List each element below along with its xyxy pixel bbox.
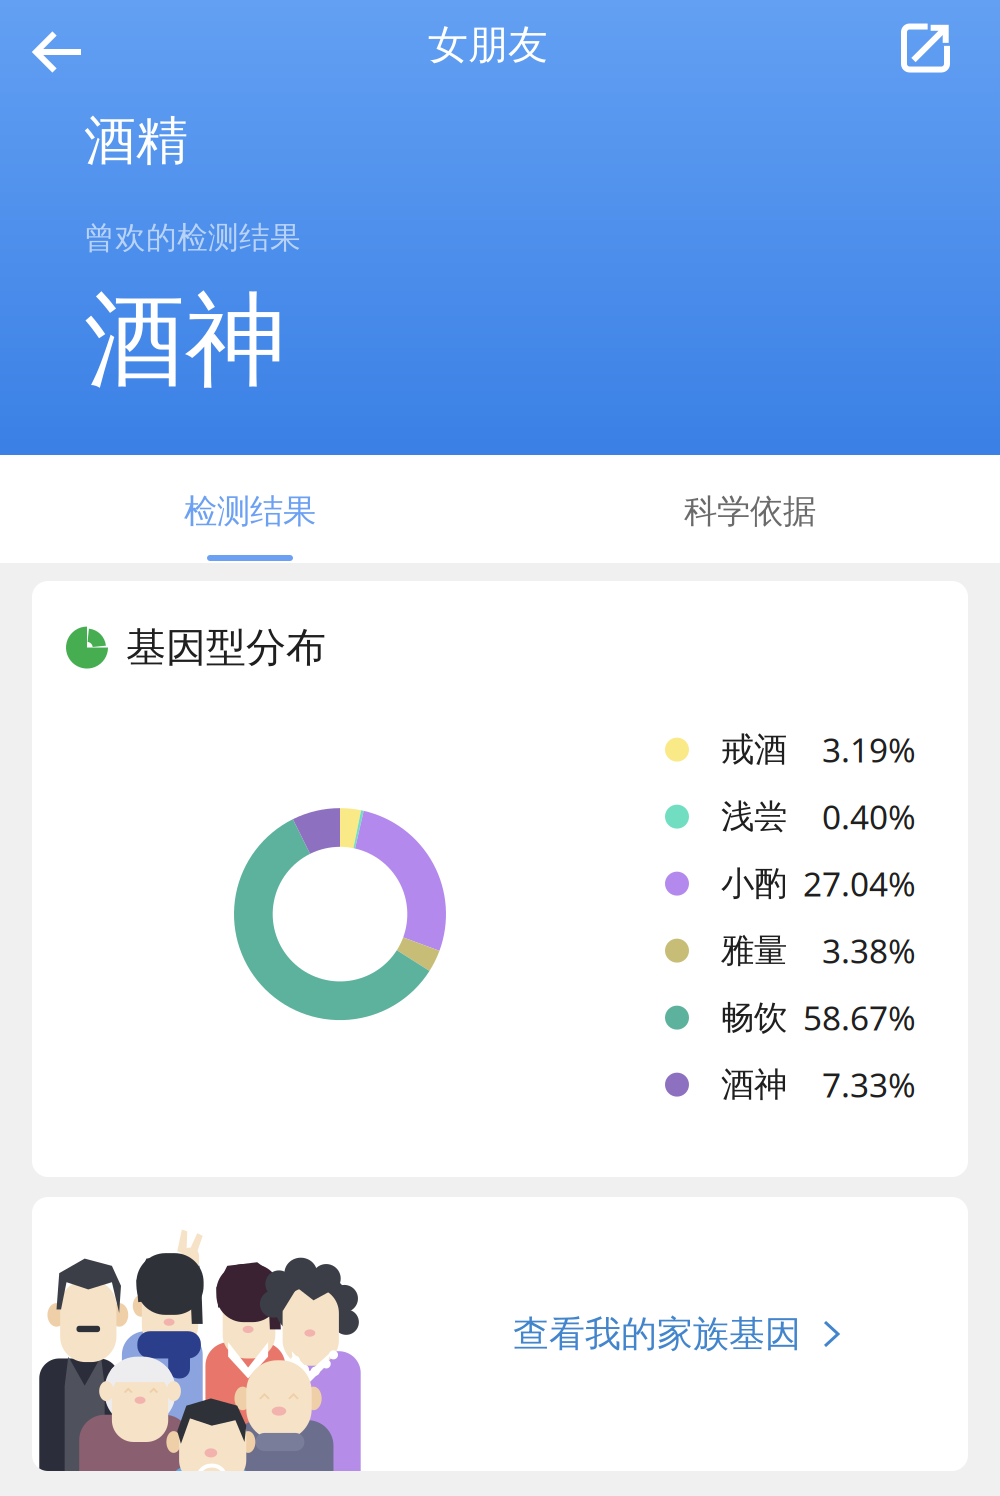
staticText: 3.19% (822, 727, 916, 772)
staticText: 检测结果 (184, 491, 316, 532)
button[interactable]: Back (0, 1, 103, 94)
button[interactable]: 检测结果 (0, 455, 500, 563)
staticText: 酒精 (84, 109, 188, 173)
staticText: 科学依据 (684, 491, 816, 532)
staticText: 7.33% (822, 1062, 916, 1107)
button[interactable]: 查看我的家族基因 (32, 1197, 968, 1471)
staticText: 畅饮 (721, 997, 787, 1038)
staticText: 基因型分布 (126, 623, 326, 672)
staticText: 酒神 (721, 1064, 787, 1105)
staticText: 酒神 (84, 278, 286, 403)
staticText: 戒酒 (721, 729, 787, 770)
staticText: 3.38% (822, 928, 916, 973)
staticText: 女朋友 (428, 20, 548, 69)
staticText: 曾欢的检测结果 (84, 219, 301, 257)
staticText: 查看我的家族基因 (513, 1312, 801, 1356)
staticText: 浅尝 (721, 796, 787, 837)
button[interactable]: Share (879, 5, 1000, 90)
staticText: 雅量 (721, 930, 787, 971)
staticText: 27.04% (803, 861, 916, 906)
staticText: 58.67% (803, 995, 916, 1040)
staticText: 小酌 (721, 863, 787, 904)
button[interactable]: 科学依据 (500, 455, 1000, 563)
staticText: 0.40% (822, 794, 916, 839)
